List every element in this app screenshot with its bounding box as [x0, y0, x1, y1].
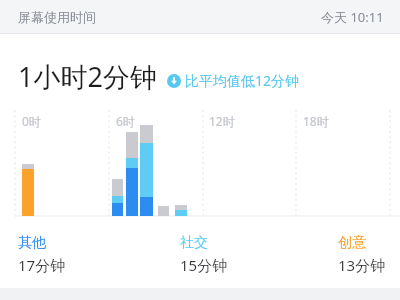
staticText: 比平均值低12分钟	[185, 71, 300, 90]
staticText: 创意	[338, 234, 366, 252]
staticText: 其他	[18, 234, 46, 252]
button[interactable]: 社交	[180, 234, 236, 279]
staticText: 17分钟	[18, 255, 66, 275]
staticText: 15分钟	[180, 255, 228, 275]
staticText: 社交	[180, 234, 208, 252]
staticText: 6时	[116, 113, 135, 129]
other: 低于平均值	[167, 74, 181, 88]
button[interactable]: 屏幕使用时间	[0, 0, 400, 33]
staticText: 今天 10:11	[321, 8, 384, 26]
staticText: 18时	[303, 113, 329, 129]
button[interactable]: 其他	[18, 234, 74, 279]
staticText: 1小时2分钟	[18, 58, 157, 95]
staticText: 12时	[209, 113, 235, 129]
staticText: 0时	[22, 113, 41, 129]
staticText: 13分钟	[338, 255, 386, 275]
button[interactable]: 创意	[338, 234, 394, 279]
staticText: 屏幕使用时间	[18, 9, 96, 25]
button[interactable]: 1小时2分钟	[0, 34, 400, 288]
